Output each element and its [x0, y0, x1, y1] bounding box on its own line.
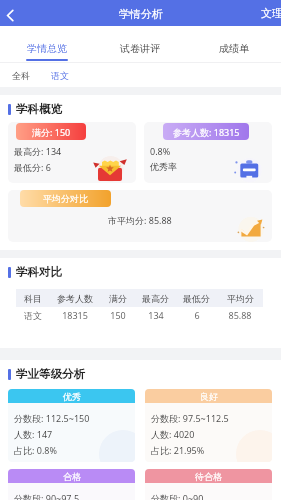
staticText: 分数段: 0~90 [151, 492, 204, 500]
staticText: 分数段: 90~97.5 [14, 492, 80, 500]
staticText: 良好 [200, 391, 218, 402]
staticText: 语文 [24, 310, 42, 321]
staticText: 人数: 147 [14, 428, 53, 440]
staticText: 分数段: 112.5~150 [14, 412, 90, 424]
staticText: 语文 [51, 70, 69, 81]
staticText: 人数: 4020 [151, 428, 195, 440]
staticText: 最高分: 134 [14, 145, 62, 157]
staticText: 学科对比 [16, 265, 62, 279]
staticText: 0.8% [150, 145, 171, 157]
staticText: 占比: 0.8% [14, 444, 57, 456]
button[interactable]: 全科 [10, 66, 32, 85]
staticText: 最高分 [142, 293, 169, 304]
staticText: 优秀 [63, 391, 81, 402]
staticText: 占比: 21.95% [151, 444, 205, 456]
button[interactable]: 待合格 [145, 469, 272, 500]
staticText: 平均分 [227, 293, 254, 304]
staticText: 85.88 [228, 309, 252, 321]
staticText: 150 [110, 309, 126, 321]
staticText: 134 [148, 309, 164, 321]
staticText: 满分: 150 [32, 126, 71, 138]
button[interactable]: 文理 [258, 2, 281, 24]
staticText: 学业等级分析 [16, 367, 85, 381]
staticText: 最低分: 6 [14, 161, 51, 173]
button[interactable]: 参考人数: 18315 [144, 122, 272, 183]
staticText: 试卷讲评 [120, 42, 160, 55]
staticText: 6 [194, 309, 200, 321]
staticText: 分数段: 97.5~112.5 [151, 412, 229, 424]
staticText: 学科概览 [16, 102, 62, 116]
staticText: 满分 [109, 293, 127, 304]
button[interactable]: Back [0, 0, 20, 26]
button[interactable]: 良好 [145, 389, 272, 462]
staticText: 合格 [63, 471, 81, 482]
button[interactable]: 优秀 [8, 389, 135, 462]
staticText: 成绩单 [219, 42, 249, 55]
staticText: 优秀率 [150, 161, 177, 172]
button[interactable]: 成绩单 [187, 26, 281, 63]
staticText: 平均分对比 [43, 193, 88, 204]
staticText: 全科 [12, 70, 30, 81]
button[interactable]: 满分: 150 [8, 122, 136, 183]
staticText: 18315 [62, 309, 88, 321]
staticText: 待合格 [195, 471, 222, 482]
staticText: 科目 [24, 293, 42, 304]
staticText: 最低分 [183, 293, 210, 304]
staticText: 学情总览 [27, 42, 67, 55]
button[interactable]: 试卷讲评 [93, 26, 187, 63]
button[interactable]: 语文 [49, 66, 71, 85]
staticText: 参考人数 [57, 293, 93, 304]
button[interactable]: 平均分对比 [8, 190, 272, 242]
button[interactable]: 合格 [8, 469, 135, 500]
button[interactable]: 学情总览 [0, 26, 93, 63]
staticText: 学情分析 [119, 7, 163, 21]
staticText: 文理 [261, 6, 281, 20]
staticText: 市平均分: 85.88 [108, 214, 172, 226]
staticText: 参考人数: 18315 [173, 126, 240, 138]
